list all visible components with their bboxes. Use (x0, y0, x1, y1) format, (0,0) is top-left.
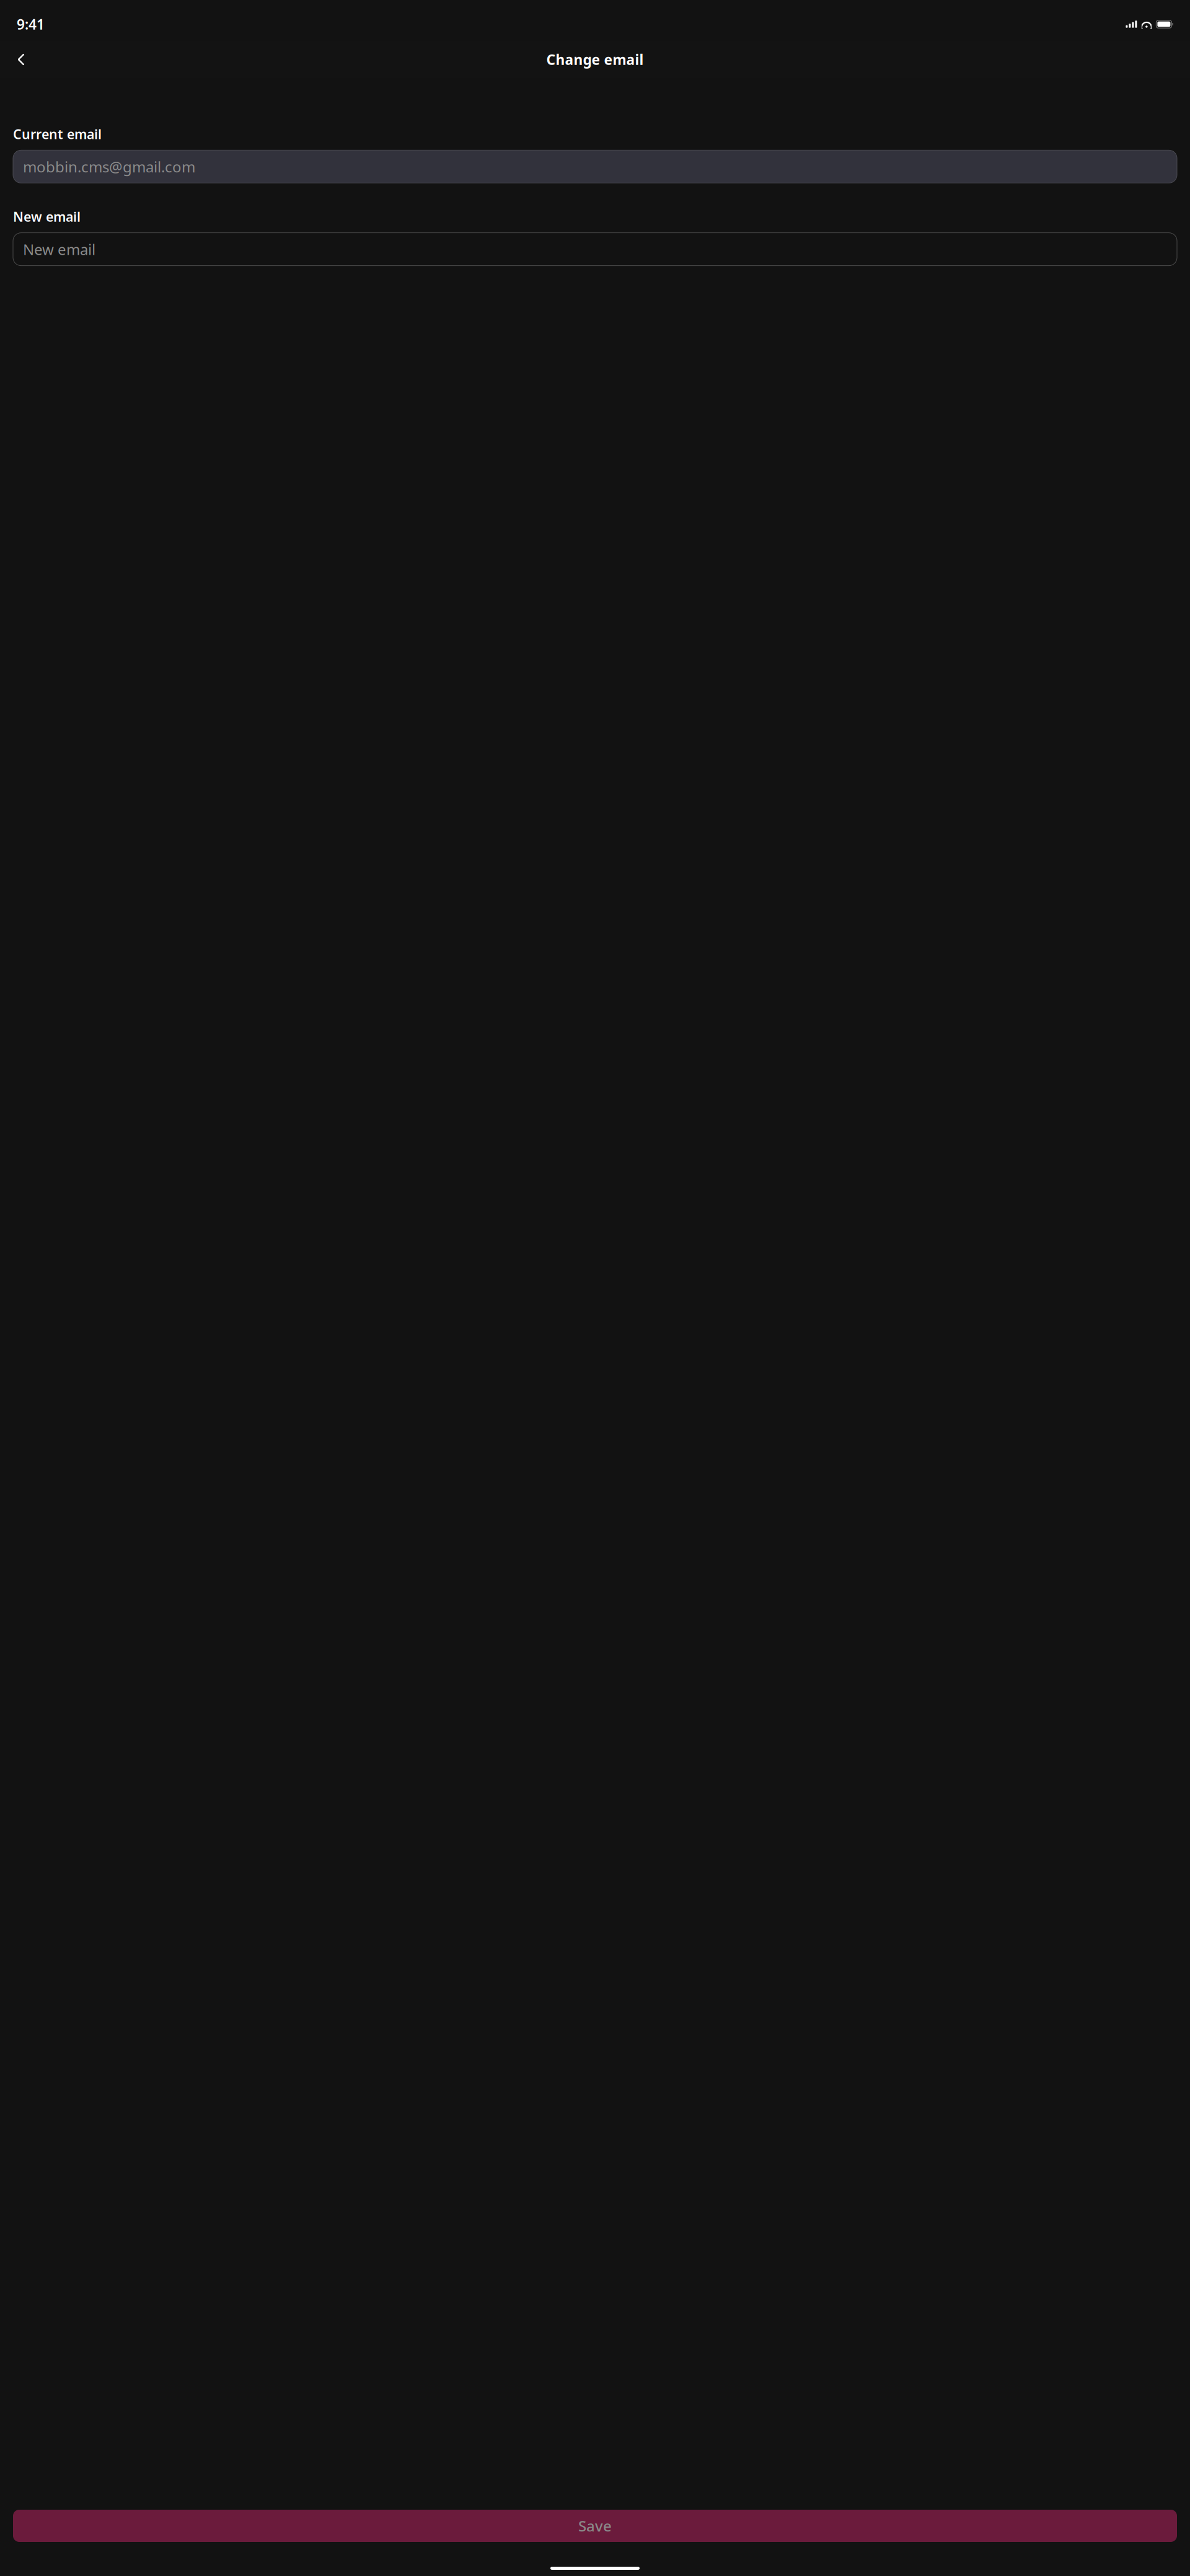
button[interactable]: Back (7, 46, 35, 73)
staticText: mobbin.cms@gmail.com (23, 157, 195, 176)
staticText: New email (13, 208, 81, 225)
staticText: 9:41 (17, 15, 45, 33)
staticText: Current email (13, 125, 102, 143)
staticText: Change email (546, 50, 644, 69)
staticText: New email (23, 239, 95, 259)
staticText: Save (578, 2516, 612, 2536)
button[interactable]: New email (13, 233, 1177, 266)
button[interactable]: Save (13, 2510, 1177, 2542)
button[interactable]: mobbin.cms@gmail.com (13, 150, 1177, 183)
